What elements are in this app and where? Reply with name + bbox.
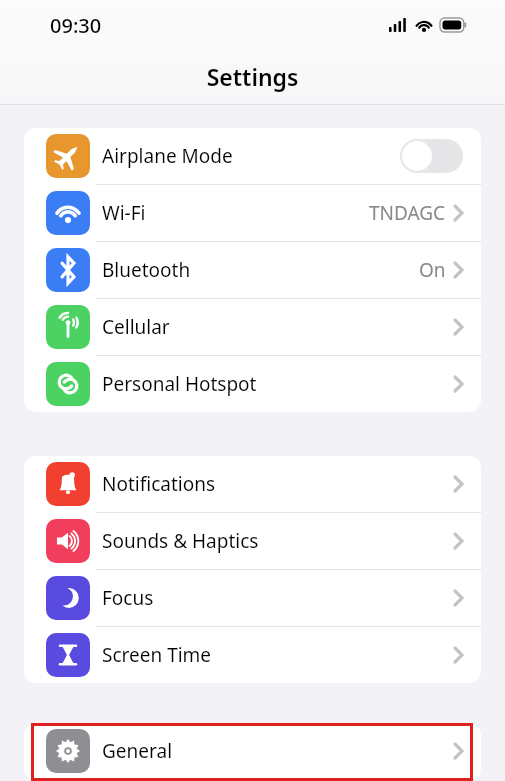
button[interactable]: Notifications — [24, 456, 481, 513]
staticText: Focus — [102, 585, 154, 611]
button[interactable]: Cellular — [24, 299, 481, 356]
button[interactable]: Sounds & Haptics — [24, 513, 481, 570]
button[interactable]: Wi-Fi — [24, 185, 481, 242]
button[interactable]: General — [24, 723, 481, 780]
button[interactable]: Airplane Mode toggle, off — [400, 139, 463, 173]
staticText: Bluetooth — [102, 257, 191, 283]
staticText: Notifications — [102, 471, 216, 497]
staticText: Sounds & Haptics — [102, 528, 259, 554]
staticText: TNDAGC — [369, 200, 446, 226]
staticText: Personal Hotspot — [102, 371, 257, 397]
button[interactable]: Focus — [24, 570, 481, 627]
button[interactable]: Personal Hotspot — [24, 356, 481, 412]
staticText: Airplane Mode — [102, 143, 233, 169]
staticText: General — [102, 738, 173, 764]
button[interactable]: Airplane Mode — [24, 128, 481, 185]
button[interactable]: Screen Time — [24, 627, 481, 683]
staticText: Settings — [0, 61, 505, 92]
staticText: 09:30 — [50, 12, 102, 39]
staticText: Wi-Fi — [102, 200, 146, 226]
staticText: On — [419, 257, 446, 283]
staticText: Cellular — [102, 314, 170, 340]
staticText: Screen Time — [102, 642, 212, 668]
button[interactable]: Bluetooth — [24, 242, 481, 299]
